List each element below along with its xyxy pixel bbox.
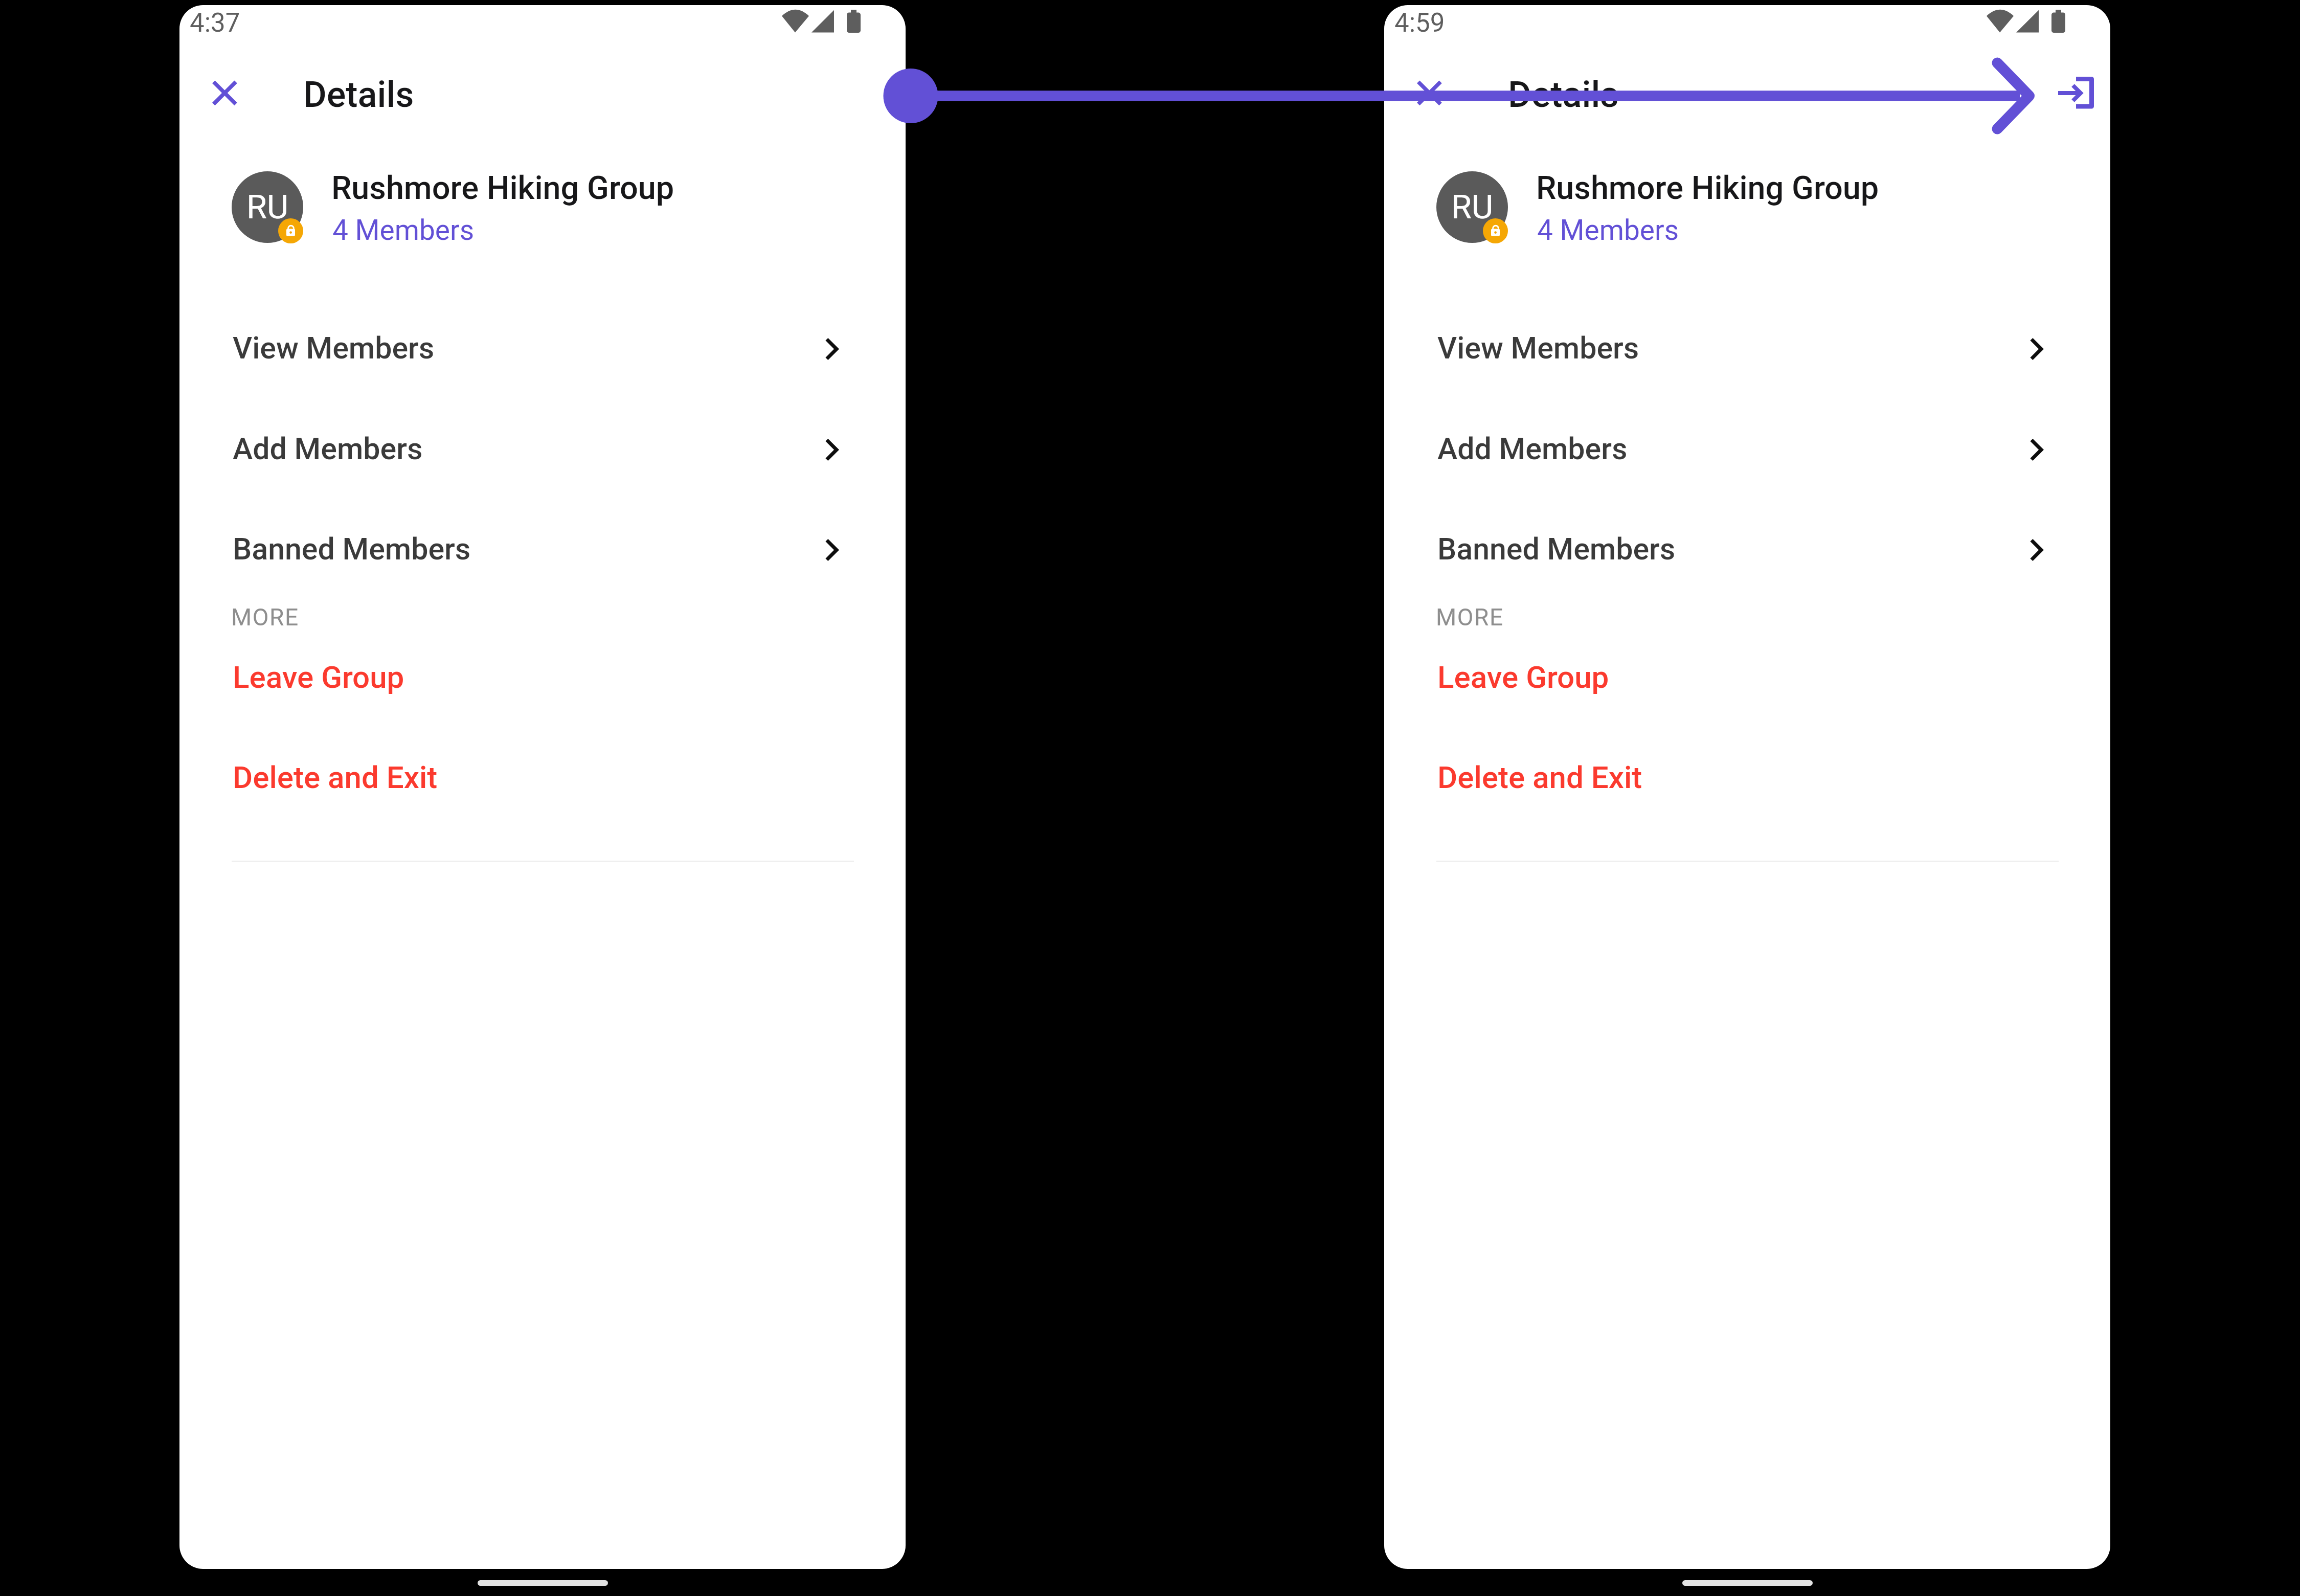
button[interactable]: View Members (179, 309, 906, 386)
button[interactable]: Banned Members (179, 510, 906, 587)
button[interactable]: Leave group (2045, 62, 2107, 124)
button[interactable]: Close (1399, 54, 1460, 116)
staticText: View Members (233, 330, 435, 366)
staticText: MORE (1436, 603, 1504, 631)
staticText: Banned Members (233, 531, 471, 567)
staticText: Details (303, 74, 414, 116)
staticText: Leave Group (1437, 659, 1609, 695)
button[interactable]: Leave Group (179, 638, 906, 715)
staticText: Leave Group (233, 659, 404, 695)
staticText: Rushmore Hiking Group (1536, 169, 1879, 207)
staticText: RU (1451, 188, 1494, 227)
staticText: Delete and Exit (1437, 759, 1642, 795)
button[interactable]: Add Members (1384, 410, 2110, 486)
staticText: View Members (1437, 330, 1639, 366)
button[interactable]: Delete and Exit (1384, 738, 2110, 815)
staticText: 4 Members (332, 214, 475, 246)
staticText: Add Members (1437, 431, 1628, 466)
button[interactable]: Add Members (179, 410, 906, 486)
button[interactable]: Delete and Exit (179, 738, 906, 815)
staticText: 4:37 (190, 8, 240, 38)
staticText: 4:59 (1394, 8, 1445, 38)
staticText: Rushmore Hiking Group (331, 169, 674, 207)
staticText: MORE (231, 603, 299, 631)
button[interactable]: Banned Members (1384, 510, 2110, 587)
staticText: Delete and Exit (233, 759, 438, 795)
staticText: Details (1508, 74, 1619, 116)
staticText: Banned Members (1437, 531, 1676, 567)
staticText: RU (246, 188, 289, 227)
staticText: Add Members (233, 431, 423, 466)
staticText: 4 Members (1537, 214, 1679, 246)
button[interactable]: View Members (1384, 309, 2110, 386)
button[interactable]: Close (194, 54, 256, 116)
button[interactable]: Leave Group (1384, 638, 2110, 715)
